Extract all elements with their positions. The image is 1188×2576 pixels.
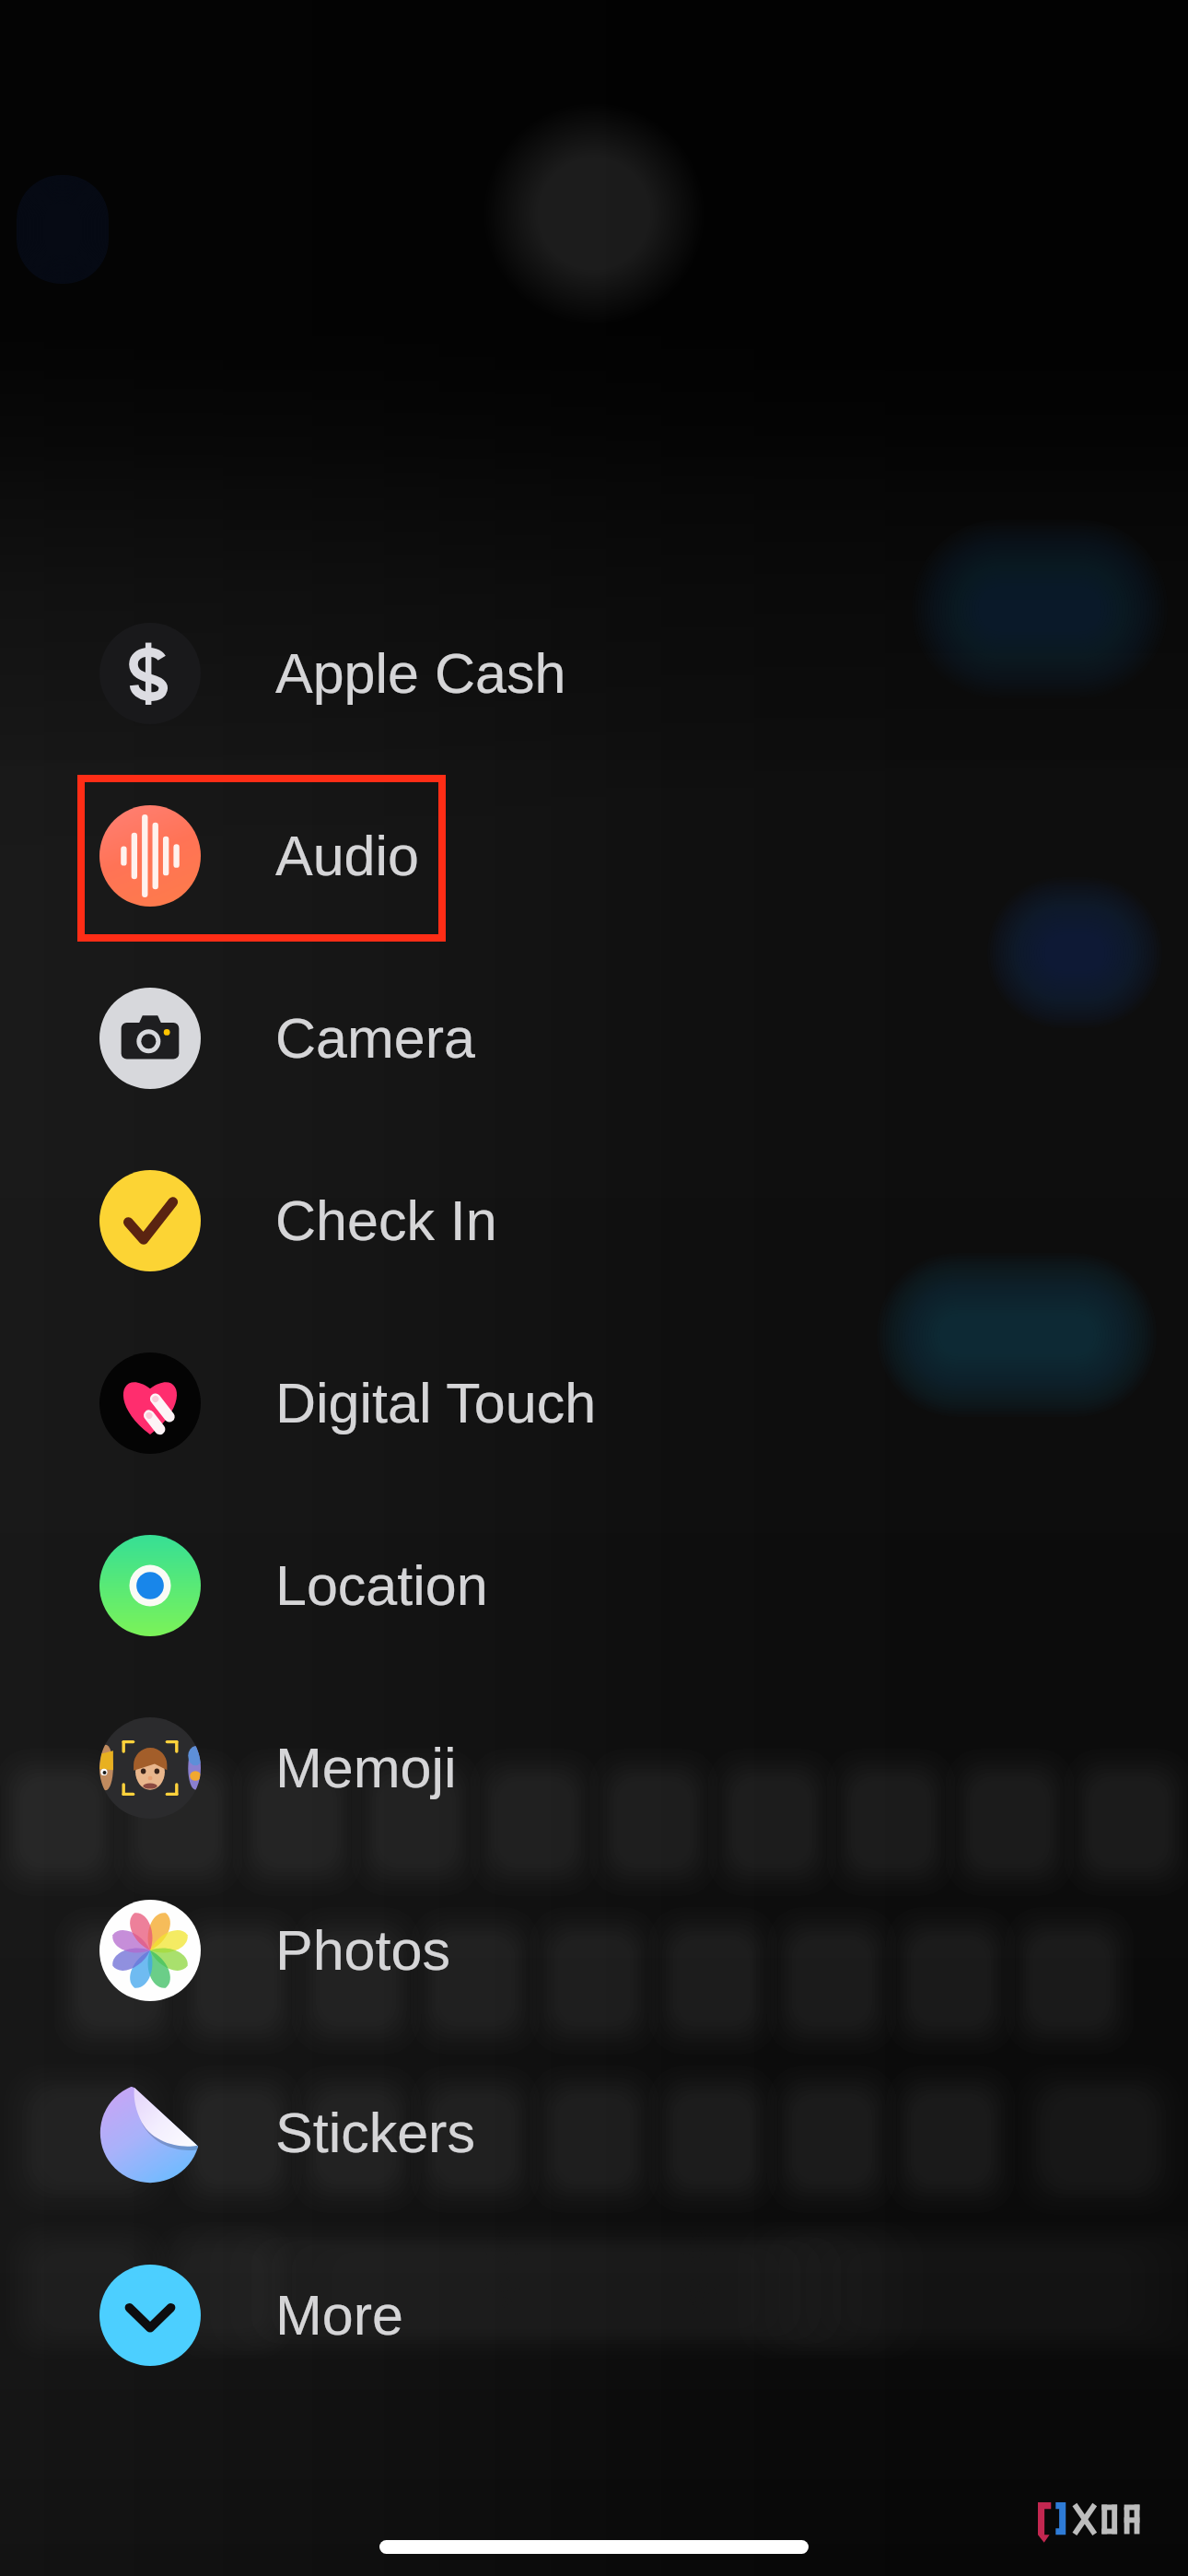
staticText: More	[275, 2284, 403, 2347]
button[interactable]: Digital Touch	[0, 1312, 1188, 1494]
button[interactable]: Photos	[0, 1859, 1188, 2042]
staticText: Apple Cash	[275, 642, 566, 705]
button[interactable]: Location	[0, 1494, 1188, 1677]
button[interactable]: Camera	[0, 947, 1188, 1130]
staticText: Location	[275, 1554, 488, 1617]
button[interactable]: Check In	[0, 1130, 1188, 1312]
button[interactable]: More	[0, 2224, 1188, 2406]
button[interactable]: Memoji	[0, 1677, 1188, 1859]
staticText: Memoji	[275, 1737, 457, 1799]
staticText: Digital Touch	[275, 1372, 597, 1434]
button[interactable]: Stickers	[0, 2042, 1188, 2224]
button[interactable]: Apple Cash	[0, 582, 1188, 765]
staticText: Check In	[275, 1189, 497, 1252]
staticText: Camera	[275, 1007, 475, 1070]
staticText: Audio	[275, 825, 420, 887]
button[interactable]: Audio	[0, 765, 1188, 947]
staticText: Stickers	[275, 2102, 475, 2164]
staticText: Photos	[275, 1919, 450, 1982]
